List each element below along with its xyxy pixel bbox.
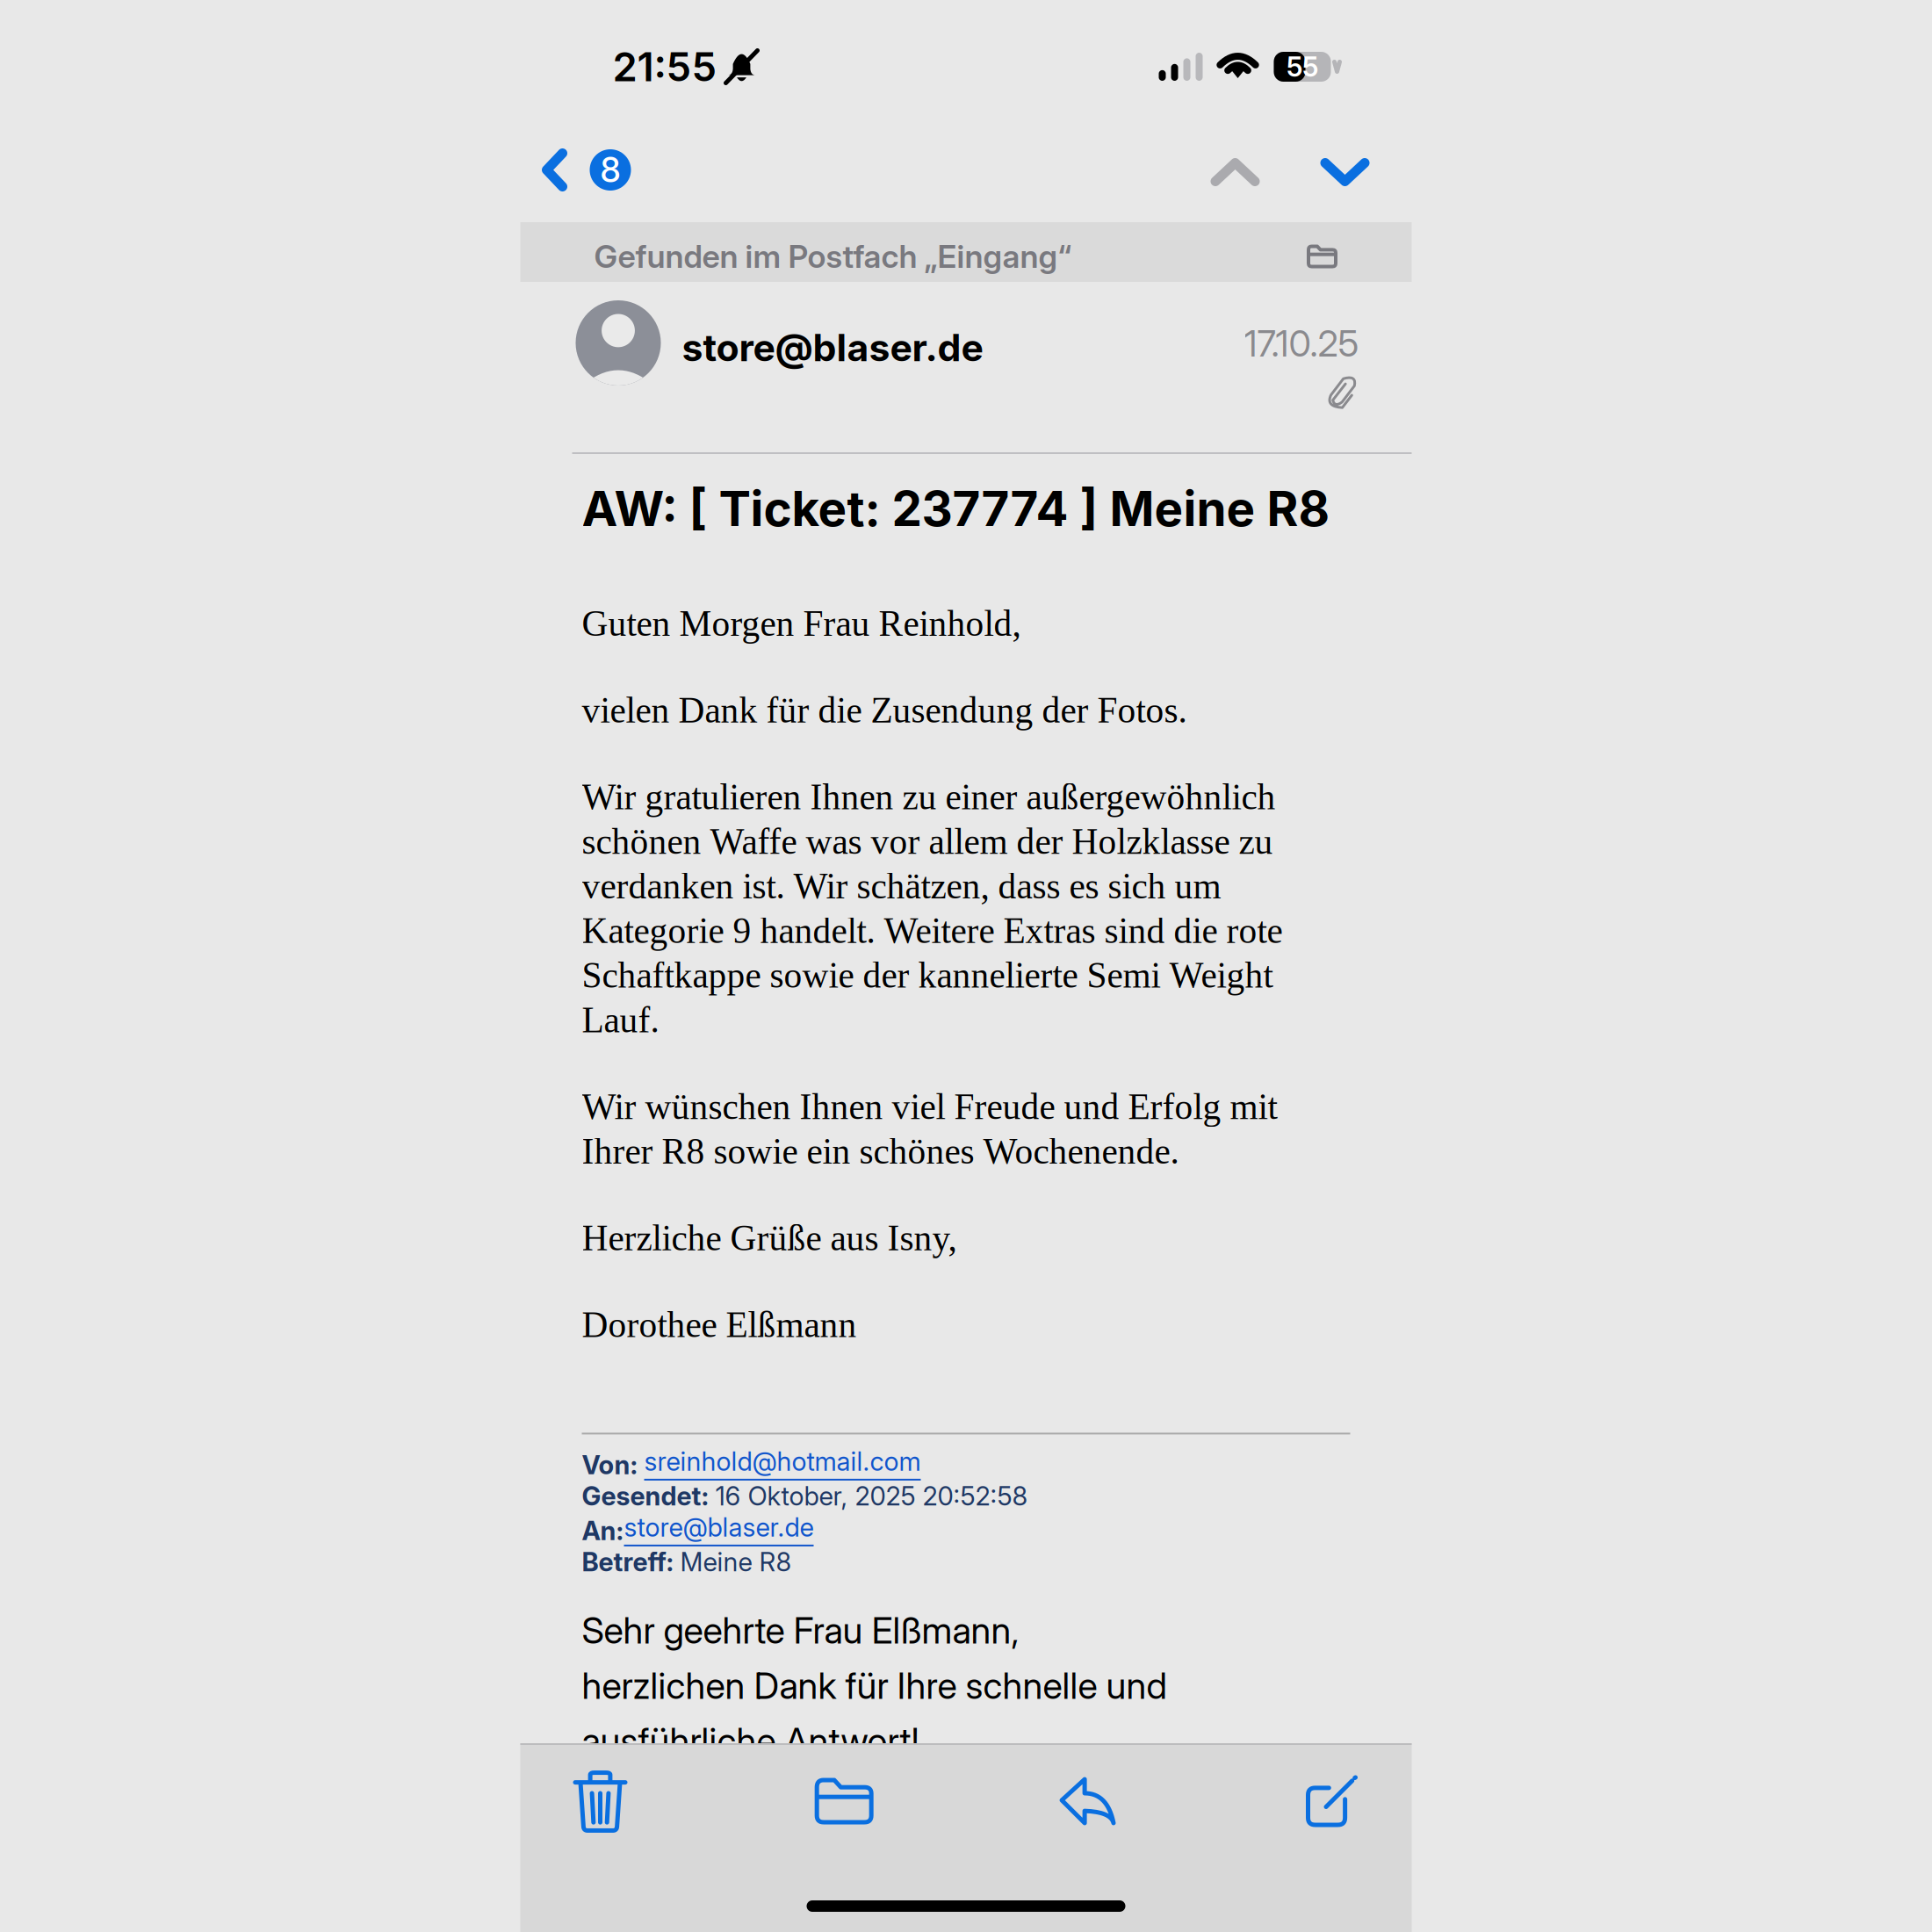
staticText: AW: [ Ticket: 237774 ] Meine R8 (582, 479, 1330, 538)
button[interactable]: Neue E-Mail schreiben (1279, 1752, 1384, 1850)
staticText: Guten Morgen Frau Reinhold, (582, 603, 1021, 644)
staticText: Betreff: (582, 1546, 680, 1578)
button[interactable]: In Ordner bewegen (791, 1752, 897, 1850)
staticText: Wir gratulieren Ihnen zu einer außergewö… (582, 777, 1283, 1040)
staticText: 55 (1287, 50, 1318, 83)
staticText: Herzliche Grüße aus Isny, (582, 1218, 957, 1258)
staticText: 17.10.25 (1244, 321, 1359, 365)
staticText: Gesendet: (582, 1481, 715, 1512)
button[interactable]: Vorherige Nachricht (1173, 133, 1298, 222)
button[interactable]: store@blaser.de (624, 1512, 814, 1546)
staticText: 8 (600, 149, 620, 190)
staticText: 16 Oktober, 2025 20:52:58 (715, 1481, 1028, 1512)
button[interactable]: Zurück zum Postfach, 8 ungelesen (520, 133, 647, 222)
button[interactable]: Löschen (548, 1752, 653, 1850)
staticText: Wir wünschen Ihnen viel Freude und Erfol… (582, 1087, 1277, 1171)
staticText: Dorothee Elßmann (582, 1305, 857, 1345)
button[interactable]: Postfach anzeigen (1290, 227, 1354, 286)
staticText: An: (582, 1515, 624, 1546)
staticText: 21:55 (613, 43, 717, 91)
button[interactable]: Antworten (1035, 1752, 1141, 1850)
staticText: Sehr geehrte Frau Elßmann, herzlichen Da… (582, 1608, 1167, 1763)
button[interactable]: sreinhold@hotmail.com (644, 1446, 921, 1481)
staticText: Gefunden im Postfach „Eingang“ (594, 237, 1072, 276)
staticText: sreinhold@hotmail.com (644, 1446, 921, 1477)
button[interactable]: Nächste Nachricht (1298, 133, 1392, 222)
staticText: vielen Dank für die Zusendung der Fotos. (582, 690, 1187, 730)
staticText: store@blaser.de (624, 1512, 814, 1543)
staticText: store@blaser.de (682, 325, 983, 370)
staticText: Von: (582, 1449, 644, 1481)
staticText: Meine R8 (680, 1546, 792, 1578)
